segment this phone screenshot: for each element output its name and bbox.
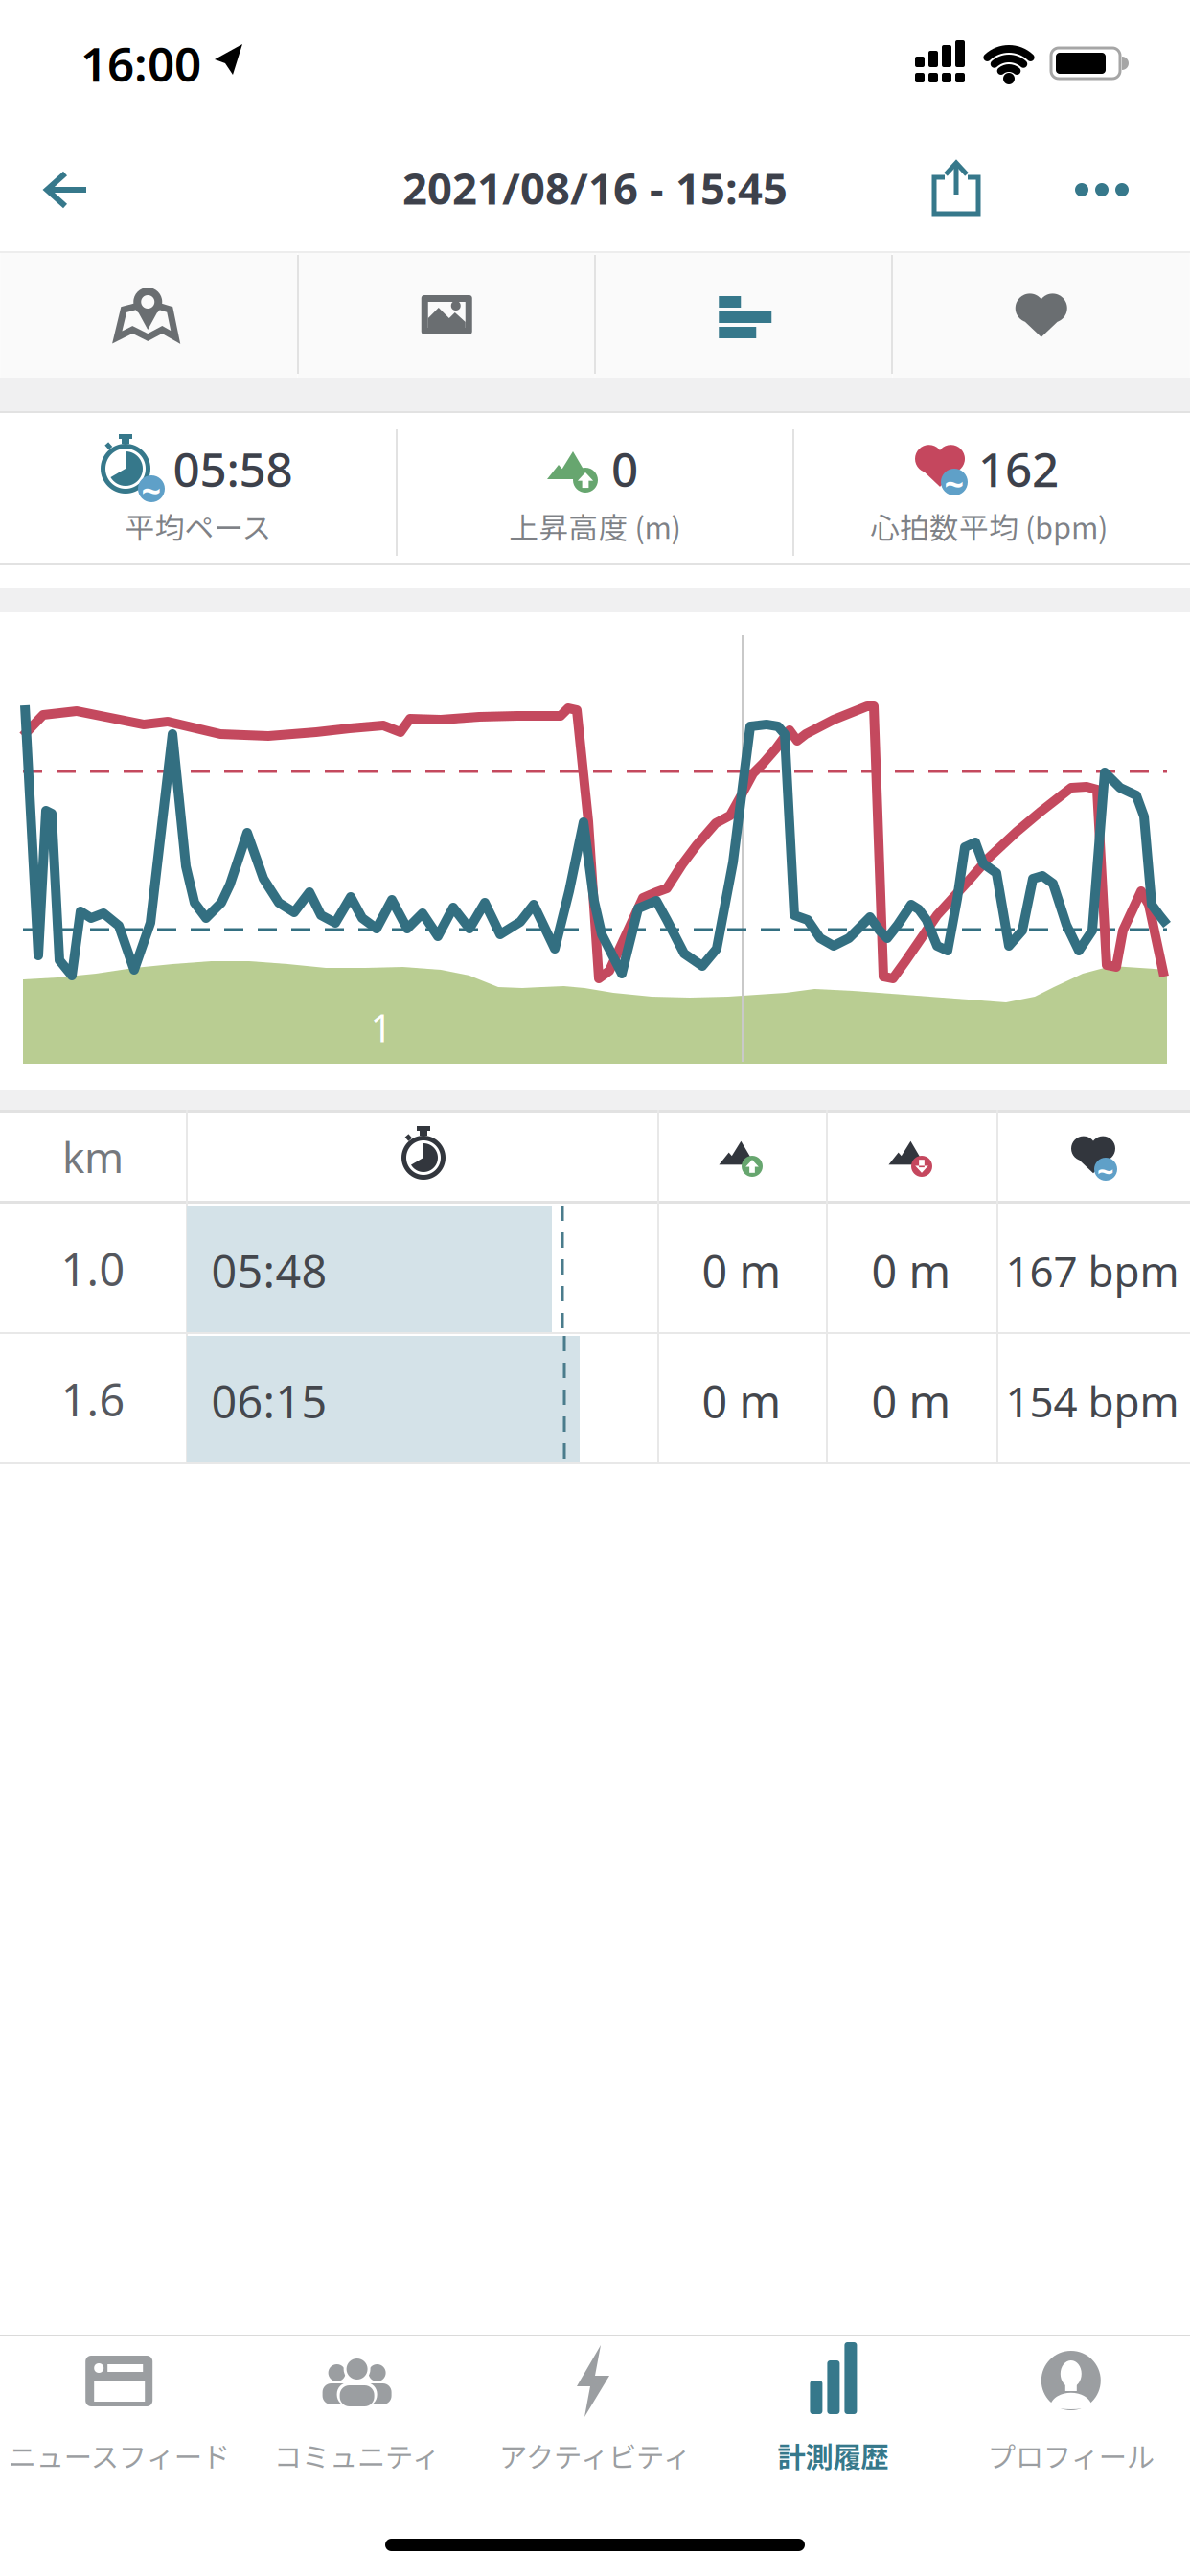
staticText: 167 bpm: [1006, 1243, 1179, 1299]
staticText: 0 m: [871, 1371, 951, 1431]
staticText: 162: [978, 437, 1059, 500]
staticText: 1: [370, 1002, 392, 1053]
staticText: プロフィール: [988, 2435, 1154, 2476]
staticText: 0 m: [871, 1241, 951, 1300]
staticText: 05:48: [211, 1241, 327, 1300]
staticText: 16:00: [80, 32, 201, 95]
staticText: ~: [1097, 1151, 1114, 1190]
button[interactable]: プロフィール: [952, 2337, 1190, 2491]
staticText: ニュースフィード: [8, 2435, 230, 2476]
button[interactable]: ニュースフィード: [0, 2337, 238, 2491]
staticText: 154 bpm: [1006, 1373, 1179, 1429]
button[interactable]: Map: [0, 251, 297, 378]
staticText: 平均ペース: [125, 505, 272, 547]
staticText: 0 m: [702, 1241, 781, 1300]
button[interactable]: Back: [10, 142, 115, 238]
staticText: 0 m: [702, 1371, 781, 1431]
staticText: 1.6: [61, 1369, 125, 1429]
staticText: ~: [944, 461, 964, 507]
staticText: 05:58: [173, 437, 293, 500]
button[interactable]: 計測履歴: [714, 2337, 952, 2491]
staticText: km: [62, 1129, 124, 1185]
button[interactable]: アクティビティ: [476, 2337, 714, 2491]
staticText: アクティビティ: [499, 2435, 691, 2476]
staticText: 計測履歴: [777, 2435, 889, 2476]
button[interactable]: コミュニティ: [238, 2337, 476, 2491]
button[interactable]: More: [1068, 161, 1135, 218]
button[interactable]: Splits: [595, 251, 892, 378]
staticText: ~: [141, 467, 161, 513]
staticText: 2021/08/16 - 15:45: [402, 159, 788, 217]
staticText: 1.0: [61, 1239, 125, 1299]
staticText: 心拍数平均 (bpm): [870, 505, 1108, 547]
button[interactable]: Heart rate: [893, 251, 1190, 378]
staticText: 0: [611, 437, 638, 500]
staticText: 06:15: [211, 1371, 327, 1431]
button[interactable]: Photos: [298, 251, 595, 378]
staticText: 上昇高度 (m): [509, 505, 681, 547]
button[interactable]: Share: [908, 162, 1004, 218]
staticText: コミュニティ: [274, 2435, 440, 2476]
